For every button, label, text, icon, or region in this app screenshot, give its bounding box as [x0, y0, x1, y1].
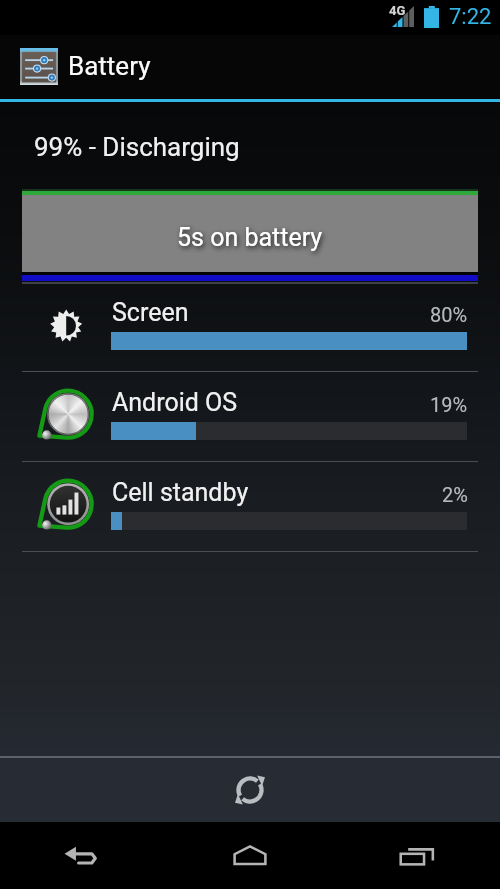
button[interactable]: Home: [166, 822, 333, 889]
staticText: 5s on battery: [177, 223, 323, 252]
button[interactable]: Screen: [0, 282, 500, 372]
staticText: Screen: [112, 298, 189, 327]
staticText: 2%: [442, 483, 468, 506]
staticText: Android OS: [112, 388, 238, 417]
staticText: Cell standby: [112, 478, 249, 507]
button[interactable]: Android OS: [0, 372, 500, 462]
staticText: 80%: [430, 303, 468, 326]
staticText: 99% - Discharging: [34, 132, 240, 162]
staticText: 4G: [389, 3, 406, 18]
button[interactable]: Cell standby: [0, 462, 500, 552]
button[interactable]: Refresh: [218, 758, 282, 822]
button[interactable]: Recent apps: [333, 822, 500, 889]
staticText: Battery: [68, 51, 151, 81]
staticText: 7:22: [449, 4, 492, 30]
button[interactable]: Back: [0, 822, 166, 889]
button[interactable]: Battery: [0, 35, 500, 99]
staticText: 19%: [430, 393, 468, 416]
